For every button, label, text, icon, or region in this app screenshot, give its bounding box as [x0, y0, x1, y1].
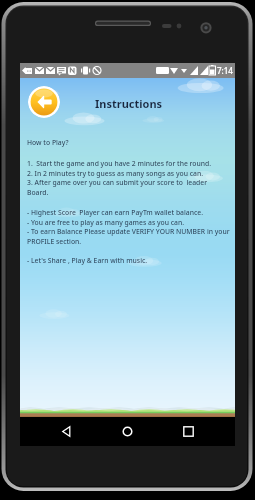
staticText: - You are free to play as many games as …: [27, 218, 185, 227]
staticText: 3. After game over you can submit your s…: [27, 178, 208, 187]
staticText: PROFILE section.: [27, 237, 82, 246]
staticText: - Highest Score Player can earn PayTm wa…: [27, 208, 204, 217]
staticText: Board.: [27, 188, 49, 197]
staticText: - To earn Balance Please update VERIFY Y…: [27, 227, 230, 236]
staticText: 7:14: [217, 65, 233, 76]
button[interactable]: Back: [52, 417, 81, 446]
button[interactable]: Back: [28, 86, 60, 118]
staticText: How to Play?: [27, 138, 69, 147]
staticText: Instructions: [95, 96, 163, 111]
button[interactable]: Home: [113, 417, 142, 446]
staticText: - Let's Share , Play & Earn with music.: [27, 256, 148, 265]
staticText: 1. Start the game and you have 2 minutes…: [27, 159, 212, 168]
staticText: 2. In 2 minutes try to guess as many son…: [27, 169, 204, 178]
button[interactable]: Recents: [174, 417, 203, 446]
